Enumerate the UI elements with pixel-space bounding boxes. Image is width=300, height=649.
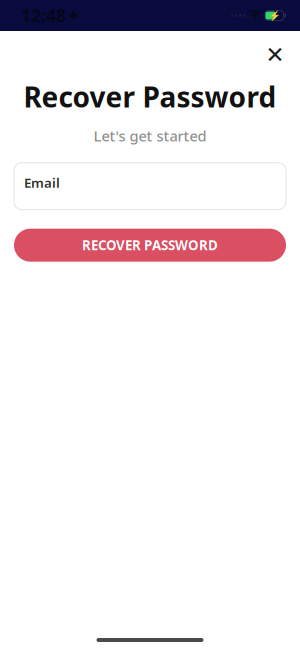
button[interactable]: RECOVER PASSWORD bbox=[14, 229, 286, 262]
staticText: 12:48 bbox=[21, 4, 66, 27]
button[interactable]: Close bbox=[258, 38, 292, 72]
staticText: RECOVER PASSWORD bbox=[82, 236, 218, 254]
staticText: ⚡ bbox=[268, 10, 280, 21]
staticText: Email bbox=[24, 174, 60, 191]
staticText: Recover Password bbox=[23, 78, 276, 115]
button[interactable]: Email bbox=[14, 163, 286, 210]
staticText: ✕ bbox=[265, 42, 284, 68]
staticText: Let's get started bbox=[93, 126, 206, 146]
